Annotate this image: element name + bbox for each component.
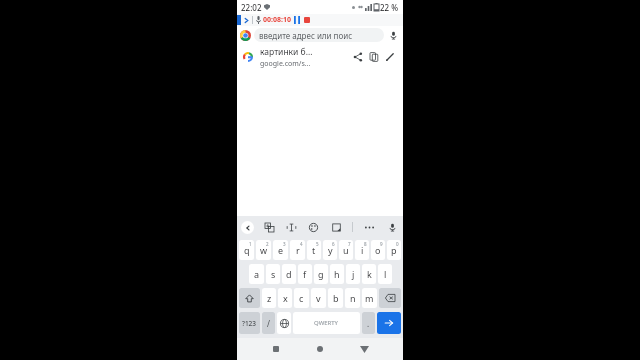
button[interactable]: . <box>362 312 375 334</box>
staticText: 00:08:10 <box>263 15 291 25</box>
button[interactable]: введите адрес или поис <box>254 28 384 42</box>
staticText: o <box>375 244 381 256</box>
staticText: QWERTY <box>314 319 339 327</box>
staticText: h <box>334 268 340 280</box>
staticText: z <box>267 292 272 304</box>
staticText: v <box>316 292 321 304</box>
button[interactable]: Translate <box>262 220 276 234</box>
staticText: x <box>283 292 288 304</box>
button[interactable]: f <box>298 264 312 284</box>
button[interactable]: Home <box>310 339 330 359</box>
staticText: k <box>367 268 372 280</box>
staticText: p <box>391 244 397 256</box>
button[interactable]: / <box>262 312 275 334</box>
staticText: b <box>333 292 339 304</box>
button[interactable]: k <box>362 264 376 284</box>
button[interactable]: Back <box>354 339 374 359</box>
button[interactable]: g <box>314 264 328 284</box>
staticText: картинки б… <box>260 46 313 58</box>
button[interactable]: v <box>311 288 326 308</box>
staticText: e <box>278 244 284 256</box>
staticText: q <box>244 244 250 256</box>
staticText: 8 <box>364 241 367 247</box>
staticText: r <box>296 244 300 256</box>
button[interactable]: w <box>256 240 271 260</box>
button[interactable]: y <box>323 240 337 260</box>
button[interactable]: u <box>339 240 353 260</box>
button[interactable]: Backspace <box>379 288 401 308</box>
staticText: m <box>365 292 374 304</box>
staticText: a <box>254 268 260 280</box>
button[interactable]: c <box>294 288 309 308</box>
button[interactable]: Go <box>377 312 401 334</box>
staticText: t <box>312 244 316 256</box>
staticText: google.com/s… <box>260 59 311 69</box>
button[interactable]: Shift <box>239 288 260 308</box>
staticText: введите адрес или поис <box>259 30 353 41</box>
button[interactable]: x <box>278 288 292 308</box>
button[interactable]: i <box>355 240 369 260</box>
staticText: ?123 <box>242 319 257 328</box>
staticText: 22 % <box>380 2 399 13</box>
button[interactable]: Voice search <box>387 29 400 42</box>
staticText: 3 <box>283 241 286 247</box>
other: Pause recording <box>294 16 300 24</box>
button[interactable]: s <box>266 264 280 284</box>
button[interactable]: o <box>371 240 385 260</box>
staticText: w <box>260 244 268 256</box>
button[interactable]: m <box>362 288 377 308</box>
other: Chrome <box>240 30 251 41</box>
staticText: l <box>384 268 387 280</box>
button[interactable]: картинки б… <box>237 44 403 70</box>
button[interactable]: j <box>346 264 360 284</box>
button[interactable]: Text editing <box>284 220 298 234</box>
button[interactable]: ?123 <box>239 312 260 334</box>
button[interactable]: b <box>328 288 343 308</box>
staticText: 6 <box>332 241 335 247</box>
staticText: j <box>352 268 355 280</box>
button[interactable]: Themes <box>306 220 320 234</box>
button[interactable]: e <box>273 240 288 260</box>
button[interactable]: z <box>262 288 276 308</box>
button[interactable]: h <box>330 264 344 284</box>
other: Microphone <box>256 16 261 24</box>
staticText: 9 <box>380 241 383 247</box>
staticText: n <box>350 292 356 304</box>
staticText: 0 <box>396 241 399 247</box>
staticText: / <box>267 318 270 329</box>
button[interactable]: p <box>387 240 401 260</box>
button[interactable]: Clipboard <box>329 220 343 234</box>
button[interactable]: n <box>345 288 360 308</box>
staticText: f <box>303 268 307 280</box>
button[interactable]: More options <box>362 220 376 234</box>
staticText: 22:02 <box>241 2 262 13</box>
button[interactable]: Voice input <box>385 220 399 234</box>
button[interactable]: Share <box>350 49 366 65</box>
button[interactable]: Change language <box>277 312 291 334</box>
button[interactable]: d <box>282 264 296 284</box>
staticText: 2 <box>266 241 269 247</box>
staticText: u <box>343 244 349 256</box>
staticText: c <box>299 292 304 304</box>
staticText: i <box>361 244 364 256</box>
staticText: s <box>271 268 276 280</box>
staticText: . <box>367 318 370 329</box>
staticText: 4 <box>300 241 303 247</box>
staticText: 1 <box>249 241 252 247</box>
button[interactable]: q <box>239 240 254 260</box>
button[interactable]: a <box>249 264 264 284</box>
button[interactable]: t <box>307 240 321 260</box>
staticText: y <box>328 244 333 256</box>
button[interactable]: l <box>378 264 392 284</box>
other: Expand <box>243 17 250 24</box>
button[interactable]: Back <box>241 221 254 234</box>
button[interactable]: QWERTY <box>293 312 360 334</box>
staticText: 5 <box>316 241 319 247</box>
button[interactable]: r <box>290 240 305 260</box>
staticText: g <box>318 268 324 280</box>
button[interactable]: Edit <box>382 49 398 65</box>
button[interactable]: Stop recording <box>304 17 310 23</box>
button[interactable]: Copy <box>366 49 382 65</box>
staticText: 7 <box>348 241 351 247</box>
button[interactable]: Recents <box>266 339 286 359</box>
